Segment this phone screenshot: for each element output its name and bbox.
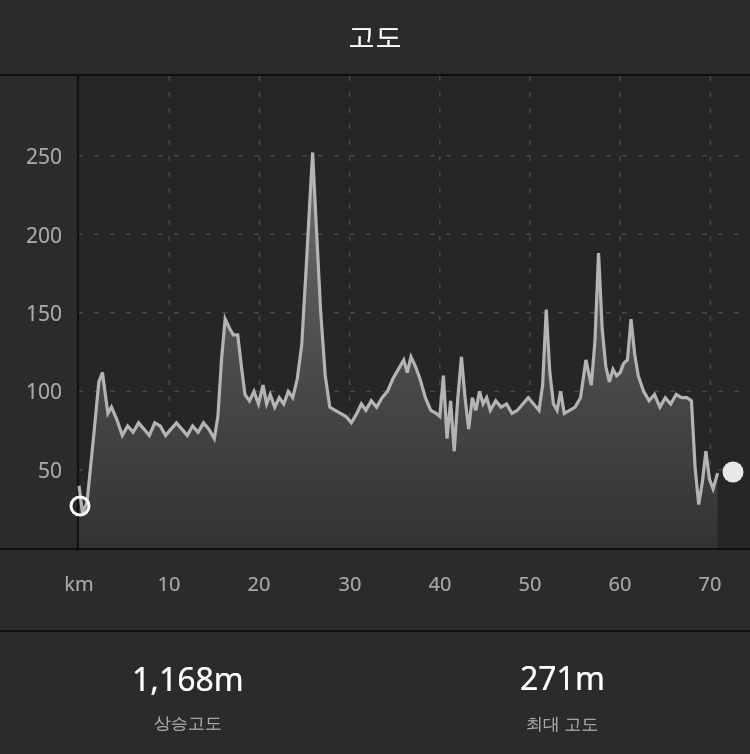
staticText: 50 <box>490 570 570 597</box>
staticText: 60 <box>580 570 660 597</box>
staticText: 50 <box>0 456 62 485</box>
staticText: 100 <box>0 377 62 406</box>
button[interactable]: 고도 <box>0 0 750 74</box>
staticText: 200 <box>0 221 62 250</box>
button[interactable]: 271m <box>375 632 750 754</box>
staticText: 150 <box>0 299 62 328</box>
staticText: 271m <box>520 656 605 700</box>
staticText: 20 <box>219 570 299 597</box>
other: Elevation chart <box>0 76 750 548</box>
staticText: km <box>39 570 119 597</box>
staticText: 40 <box>400 570 480 597</box>
staticText: 30 <box>310 570 390 597</box>
staticText: 최대 고도 <box>526 712 599 735</box>
staticText: 고도 <box>348 20 402 54</box>
staticText: 250 <box>0 142 62 171</box>
staticText: 상승고도 <box>154 713 222 734</box>
staticText: 1,168m <box>132 657 244 701</box>
button[interactable]: 1,168m <box>0 632 375 754</box>
staticText: 10 <box>129 570 209 597</box>
staticText: 70 <box>670 570 750 597</box>
